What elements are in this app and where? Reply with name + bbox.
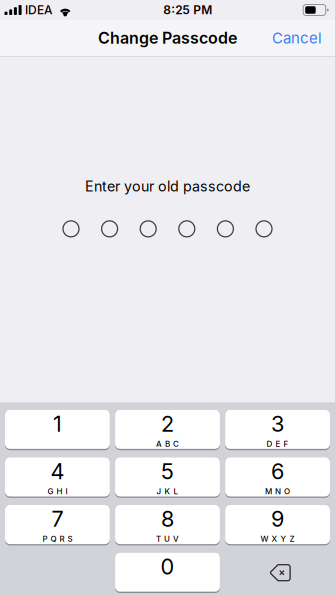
staticText: 9: [271, 506, 284, 532]
staticText: 3: [271, 411, 284, 437]
staticText: 1: [53, 411, 62, 437]
staticText: Change Passcode: [98, 28, 237, 48]
staticText: M N O: [265, 486, 290, 496]
button[interactable]: 0: [115, 552, 220, 593]
staticText: D E F: [267, 439, 289, 449]
staticText: 6: [271, 458, 284, 484]
staticText: W X Y Z: [261, 534, 295, 544]
staticText: 4: [50, 458, 64, 484]
staticText: G H I: [47, 486, 67, 496]
button[interactable]: 8: [115, 505, 220, 545]
button[interactable]: 1: [5, 410, 110, 450]
button[interactable]: Delete: [225, 552, 330, 593]
staticText: T U V: [156, 534, 179, 544]
staticText: J K L: [156, 486, 178, 496]
staticText: 5: [161, 458, 174, 484]
staticText: Cancel: [272, 29, 322, 47]
button[interactable]: 4: [5, 457, 110, 498]
button[interactable]: 2: [115, 410, 220, 450]
button[interactable]: 3: [225, 410, 330, 450]
button[interactable]: 9: [225, 505, 330, 545]
staticText: Enter your old passcode: [85, 178, 250, 195]
staticText: 2: [161, 411, 174, 437]
staticText: A B C: [156, 439, 179, 449]
staticText: 7: [51, 506, 63, 532]
staticText: 8: [161, 506, 174, 532]
button[interactable]: Cancel: [262, 20, 335, 56]
staticText: P Q R S: [42, 534, 72, 544]
button[interactable]: 5: [115, 457, 220, 498]
button[interactable]: 6: [225, 457, 330, 498]
staticText: IDEA: [25, 3, 53, 17]
staticText: 8:25 PM: [163, 3, 212, 17]
staticText: 0: [160, 553, 174, 580]
button[interactable]: 7: [5, 505, 110, 545]
